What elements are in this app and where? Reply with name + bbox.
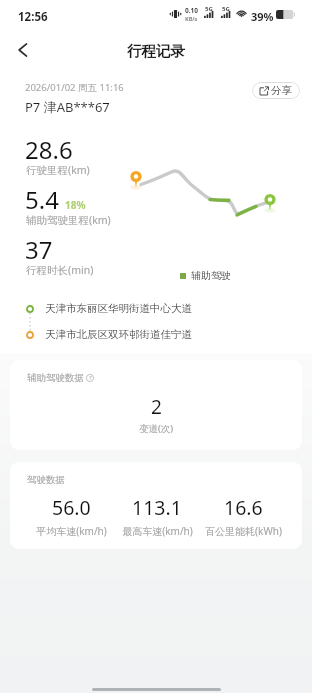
staticText: 辅助驾驶 xyxy=(191,269,231,282)
staticText: 0.10 xyxy=(185,6,198,15)
staticText: 56.0 xyxy=(52,494,91,521)
staticText: 辅助驾驶数据 xyxy=(27,372,84,384)
staticText: 5.4 xyxy=(25,183,59,216)
button[interactable]: 天津市东丽区华明街道中心大道 xyxy=(0,302,312,315)
staticText: 113.1 xyxy=(132,494,182,521)
staticText: 天津市东丽区华明街道中心大道 xyxy=(45,302,192,315)
staticText: 2 xyxy=(151,394,162,420)
staticText: 37 xyxy=(25,233,53,266)
staticText: 28.6 xyxy=(25,133,73,166)
staticText: 平均车速(km/h) xyxy=(36,524,107,538)
staticText: 分享 xyxy=(271,84,292,97)
staticText: 变道(次) xyxy=(139,422,174,435)
staticText: 5G xyxy=(205,5,213,13)
staticText: P7 津AB***67 xyxy=(25,98,110,116)
button[interactable]: 天津市北辰区双环邨街道佳宁道 xyxy=(0,328,312,341)
staticText: 12:56 xyxy=(18,9,48,25)
staticText: 驾驶数据 xyxy=(27,474,65,486)
staticText: 百公里能耗(kWh) xyxy=(205,524,282,538)
staticText: 39% xyxy=(251,9,274,24)
staticText: 最高车速(km/h) xyxy=(122,524,193,538)
staticText: 2026/01/02 周五 11:16 xyxy=(25,81,124,94)
staticText: ? xyxy=(89,374,92,382)
staticText: 天津市北辰区双环邨街道佳宁道 xyxy=(45,328,192,341)
staticText: 辅助驾驶里程(km) xyxy=(26,213,111,227)
button[interactable]: Back xyxy=(5,32,41,68)
staticText: 18% xyxy=(65,198,86,212)
staticText: KB/s xyxy=(185,15,198,22)
button[interactable]: 分享 xyxy=(252,82,300,99)
staticText: 行程记录 xyxy=(127,42,185,60)
staticText: 行程时长(min) xyxy=(26,263,94,277)
staticText: 5G xyxy=(222,5,230,13)
staticText: 行驶里程(km) xyxy=(26,163,90,177)
staticText: 16.6 xyxy=(224,494,263,521)
